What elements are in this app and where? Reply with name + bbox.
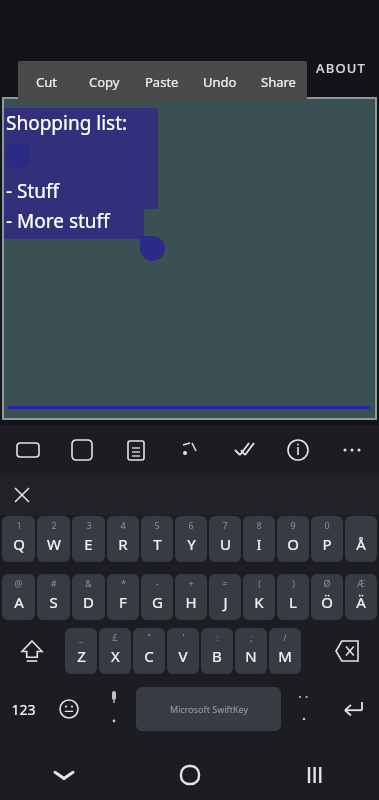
button[interactable]: Undo	[191, 61, 249, 102]
button[interactable]: 1	[2, 516, 35, 562]
button[interactable]: Tasks	[217, 425, 271, 475]
button[interactable]: #	[37, 574, 70, 620]
staticText: 3	[86, 519, 92, 531]
staticText: Cut	[36, 73, 57, 91]
staticText: C	[144, 646, 154, 666]
button[interactable]: _	[65, 628, 97, 674]
button[interactable]: /	[269, 628, 301, 674]
staticText: K	[254, 592, 264, 612]
button[interactable]: )	[277, 574, 309, 620]
button[interactable]: Ø	[311, 574, 343, 620]
button[interactable]: +	[175, 574, 207, 620]
button[interactable]: &	[72, 574, 105, 620]
staticText: 8	[256, 519, 262, 531]
button[interactable]: 3	[72, 516, 105, 562]
button[interactable]: 0	[311, 516, 343, 562]
staticText: H	[185, 592, 197, 612]
button[interactable]: *	[107, 574, 139, 620]
staticText: Y	[187, 534, 196, 554]
button[interactable]: GIF	[0, 425, 55, 475]
button[interactable]: Å	[345, 516, 377, 562]
button[interactable]: '	[167, 628, 199, 674]
button[interactable]: 4	[107, 516, 139, 562]
button[interactable]: 5	[141, 516, 173, 562]
button[interactable]: More	[325, 425, 379, 475]
staticText: @	[14, 577, 23, 589]
button[interactable]: Translate	[163, 425, 217, 475]
staticText: :	[216, 631, 219, 643]
staticText: Ø	[323, 577, 331, 589]
staticText: J	[223, 592, 228, 612]
button[interactable]: :	[201, 628, 233, 674]
button[interactable]: Hide keyboard	[0, 750, 127, 800]
staticText: *	[121, 577, 126, 589]
staticText: &	[85, 577, 92, 589]
button[interactable]: ;	[235, 628, 267, 674]
staticText: M	[278, 646, 292, 666]
button[interactable]: 9	[277, 516, 309, 562]
staticText: Q	[13, 534, 25, 554]
staticText: +	[188, 577, 194, 589]
staticText: '	[182, 631, 185, 643]
button[interactable]: Cut	[18, 61, 75, 102]
button[interactable]: 6	[175, 516, 207, 562]
staticText: U	[220, 534, 231, 554]
button[interactable]: Emoji	[46, 684, 92, 734]
staticText: ABOUT	[316, 59, 367, 77]
staticText: Ä	[356, 592, 366, 612]
button[interactable]: 8	[243, 516, 275, 562]
staticText: I	[256, 534, 262, 554]
staticText: A	[14, 592, 24, 612]
button[interactable]: £	[99, 628, 131, 674]
button[interactable]: Info	[271, 425, 325, 475]
button[interactable]: Paste	[133, 61, 191, 102]
staticText: O	[287, 534, 299, 554]
staticText: /	[283, 631, 287, 643]
button[interactable]: Enter	[327, 684, 379, 734]
button[interactable]: Backspace	[315, 628, 379, 674]
button[interactable]	[281, 684, 327, 734]
staticText: )	[292, 577, 295, 589]
button[interactable]: "	[133, 628, 165, 674]
staticText: X	[111, 646, 120, 666]
staticText: 0	[324, 519, 330, 531]
staticText: 4	[120, 519, 126, 531]
staticText: 9	[290, 519, 296, 531]
button[interactable]: ABOUT	[310, 55, 373, 81]
button[interactable]: Shift	[0, 628, 64, 674]
button[interactable]: Close	[6, 479, 38, 511]
staticText: L	[289, 592, 297, 612]
staticText: Shopping list:	[6, 110, 128, 136]
button[interactable]: @	[2, 574, 35, 620]
staticText: £	[112, 631, 118, 643]
button[interactable]: -	[141, 574, 173, 620]
button[interactable]: Share	[249, 61, 307, 102]
button[interactable]: Æ	[345, 574, 377, 620]
staticText: F	[119, 592, 127, 612]
staticText: Å	[356, 534, 366, 554]
button[interactable]: Home	[127, 750, 253, 800]
button[interactable]: Stickers	[55, 425, 109, 475]
staticText: _	[79, 631, 83, 643]
staticText: #	[51, 577, 57, 589]
staticText: 1	[16, 519, 22, 531]
staticText: R	[118, 534, 128, 554]
button[interactable]: =	[209, 574, 241, 620]
staticText: Ö	[321, 592, 333, 612]
staticText: Paste	[145, 73, 179, 91]
button[interactable]: Voice input	[92, 684, 136, 734]
button[interactable]: (	[243, 574, 275, 620]
staticText: 5	[154, 519, 160, 531]
button[interactable]: 7	[209, 516, 241, 562]
button[interactable]: Shopping list:	[6, 110, 206, 234]
staticText: P	[322, 534, 332, 554]
staticText: E	[84, 534, 93, 554]
button[interactable]: 2	[37, 516, 70, 562]
button[interactable]: Microsoft SwiftKey	[136, 687, 281, 731]
staticText: - Stuff	[6, 178, 60, 204]
button[interactable]: Copy	[75, 61, 133, 102]
button[interactable]: Recent apps	[253, 750, 379, 800]
staticText: Æ	[357, 577, 365, 589]
button[interactable]: Clipboard	[109, 425, 163, 475]
button[interactable]: 123	[0, 684, 46, 734]
